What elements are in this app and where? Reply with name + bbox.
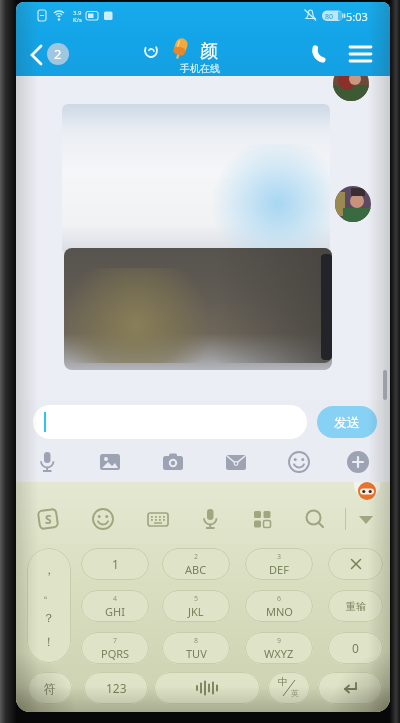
- button[interactable]: 2: [162, 548, 230, 580]
- staticText: ，: [43, 562, 55, 577]
- button[interactable]: 123: [84, 672, 148, 704]
- staticText: WXYZ: [264, 646, 294, 661]
- button[interactable]: [81, 504, 125, 534]
- staticText: 符: [44, 681, 56, 696]
- staticText: ！: [43, 634, 55, 649]
- staticText: 中: [278, 675, 288, 688]
- button[interactable]: 5: [162, 590, 230, 622]
- button[interactable]: [293, 504, 337, 534]
- staticText: 发送: [334, 414, 360, 430]
- button[interactable]: ，: [27, 548, 71, 663]
- staticText: 5: [194, 594, 199, 604]
- staticText: MNO: [266, 604, 293, 619]
- button[interactable]: 7: [81, 632, 149, 664]
- staticText: 2: [194, 552, 199, 562]
- staticText: K/s: [73, 16, 82, 24]
- button[interactable]: [328, 548, 383, 580]
- staticText: 3: [277, 552, 282, 562]
- staticText: GHI: [105, 604, 125, 619]
- button[interactable]: 3: [245, 548, 313, 580]
- button[interactable]: 4: [81, 590, 149, 622]
- button[interactable]: [64, 248, 332, 370]
- button[interactable]: [344, 504, 388, 534]
- staticText: 80: [325, 12, 334, 22]
- button[interactable]: [318, 672, 382, 704]
- button[interactable]: [33, 405, 307, 439]
- button[interactable]: [22, 36, 62, 72]
- button[interactable]: [336, 448, 380, 476]
- button[interactable]: [240, 504, 284, 534]
- staticText: 8: [194, 636, 199, 646]
- staticText: 颜: [200, 40, 218, 63]
- staticText: 123: [106, 680, 127, 696]
- button[interactable]: 2: [47, 43, 69, 65]
- button[interactable]: [304, 38, 344, 72]
- button[interactable]: 1: [81, 548, 149, 580]
- button[interactable]: [25, 448, 69, 476]
- button[interactable]: 颜: [142, 38, 264, 76]
- staticText: 9: [277, 636, 282, 646]
- staticText: DEF: [269, 562, 289, 577]
- staticText: 7: [113, 636, 118, 646]
- staticText: 重输: [346, 600, 366, 613]
- staticText: ？: [43, 610, 55, 625]
- button[interactable]: 9: [245, 632, 313, 664]
- staticText: 5:03: [346, 9, 368, 24]
- staticText: 4: [113, 594, 118, 604]
- staticText: 0: [352, 640, 359, 656]
- button[interactable]: [277, 448, 321, 476]
- button[interactable]: [335, 186, 371, 222]
- button[interactable]: [333, 76, 369, 101]
- button[interactable]: [188, 504, 232, 534]
- staticText: 6: [277, 594, 282, 604]
- staticText: 。: [43, 586, 55, 601]
- staticText: 2: [54, 45, 62, 63]
- staticText: JKL: [188, 604, 204, 619]
- staticText: 3.9: [73, 9, 82, 17]
- staticText: S: [45, 511, 52, 527]
- button[interactable]: [62, 104, 330, 254]
- button[interactable]: [136, 504, 180, 534]
- button[interactable]: 符: [28, 672, 72, 704]
- button[interactable]: S: [26, 504, 70, 534]
- staticText: ABC: [185, 562, 207, 577]
- button[interactable]: [154, 672, 260, 704]
- button[interactable]: [214, 448, 258, 476]
- staticText: 1: [112, 556, 119, 572]
- button[interactable]: [88, 448, 132, 476]
- button[interactable]: 发送: [317, 406, 377, 438]
- button[interactable]: 0: [328, 632, 383, 664]
- button[interactable]: 6: [245, 590, 313, 622]
- staticText: PQRS: [101, 646, 130, 661]
- staticText: TUV: [186, 646, 207, 661]
- button[interactable]: [344, 38, 384, 72]
- button[interactable]: [151, 448, 195, 476]
- staticText: 手机在线: [180, 62, 220, 75]
- staticText: 英: [291, 688, 299, 698]
- button[interactable]: 8: [162, 632, 230, 664]
- button[interactable]: 重输: [328, 590, 383, 622]
- button[interactable]: 中: [268, 672, 310, 704]
